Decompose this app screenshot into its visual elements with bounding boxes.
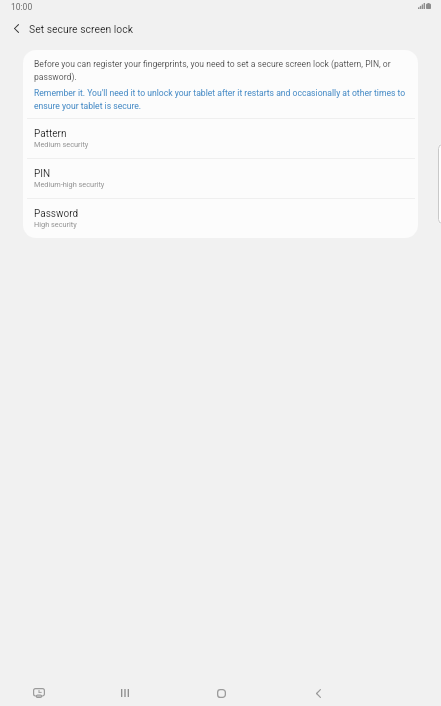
button[interactable]: Recent apps: [103, 680, 147, 706]
button[interactable]: Password: [23, 198, 418, 238]
staticText: Pattern: [34, 128, 67, 140]
staticText: Medium-high security: [34, 180, 105, 189]
staticText: Set secure screen lock: [29, 23, 133, 35]
staticText: Before you can register your fingerprint…: [34, 57, 406, 83]
staticText: Remember it. You'll need it to unlock yo…: [34, 86, 406, 112]
button[interactable]: Show keyboard: [17, 680, 61, 706]
staticText: High security: [34, 220, 77, 229]
staticText: Medium security: [34, 140, 89, 149]
button[interactable]: PIN: [23, 158, 418, 198]
staticText: 10:00: [11, 2, 33, 12]
button[interactable]: Home: [199, 680, 243, 706]
button[interactable]: Pattern: [23, 118, 418, 158]
button[interactable]: Navigate up: [5, 17, 28, 39]
staticText: Password: [34, 208, 79, 220]
staticText: PIN: [34, 168, 51, 180]
button[interactable]: Back: [296, 680, 340, 706]
